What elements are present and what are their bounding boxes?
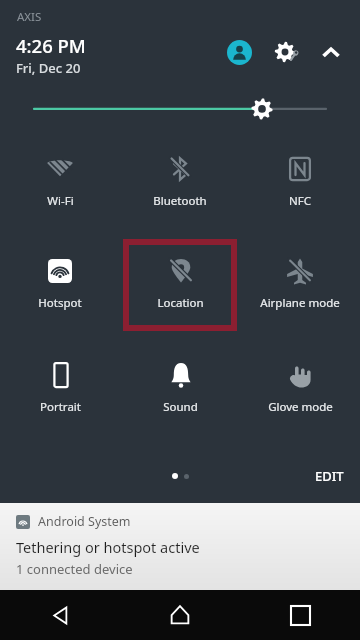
- staticText: Sound: [163, 399, 198, 415]
- staticText: Glove mode: [268, 399, 333, 415]
- staticText: Airplane mode: [260, 295, 340, 311]
- staticText: 1 connected device: [16, 560, 133, 578]
- button[interactable]: EDIT: [315, 467, 344, 485]
- staticText: Bluetooth: [153, 193, 207, 209]
- button[interactable]: Bluetooth: [153, 140, 207, 220]
- staticText: Location: [157, 295, 204, 311]
- button[interactable]: Settings: [270, 34, 306, 70]
- button[interactable]: Hotspot: [38, 242, 82, 328]
- staticText: Android System: [38, 513, 131, 530]
- button[interactable]: Back: [0, 590, 120, 640]
- button[interactable]: Sound: [163, 346, 198, 426]
- staticText: EDIT: [315, 467, 344, 485]
- staticText: Tethering or hotspot active: [16, 537, 200, 557]
- staticText: 4:26 PM: [16, 33, 86, 58]
- button[interactable]: NFC: [285, 140, 315, 220]
- button[interactable]: Wi-Fi: [45, 140, 75, 220]
- staticText: Portrait: [40, 399, 81, 415]
- button[interactable]: Location: [157, 242, 204, 328]
- staticText: NFC: [289, 193, 311, 209]
- button[interactable]: User profile: [222, 35, 256, 69]
- staticText: Fri, Dec 20: [16, 59, 81, 77]
- staticText: Wi-Fi: [47, 193, 74, 209]
- button[interactable]: Recents: [240, 590, 360, 640]
- button[interactable]: Glove mode: [268, 346, 333, 426]
- button[interactable]: Collapse: [314, 35, 348, 69]
- button[interactable]: Android System: [0, 503, 360, 590]
- button[interactable]: Airplane mode: [260, 242, 340, 328]
- button[interactable]: Home: [120, 590, 240, 640]
- staticText: AXIS: [17, 9, 42, 25]
- staticText: Hotspot: [38, 295, 82, 311]
- button[interactable]: Portrait: [40, 346, 81, 426]
- button[interactable]: Brightness: [0, 92, 360, 124]
